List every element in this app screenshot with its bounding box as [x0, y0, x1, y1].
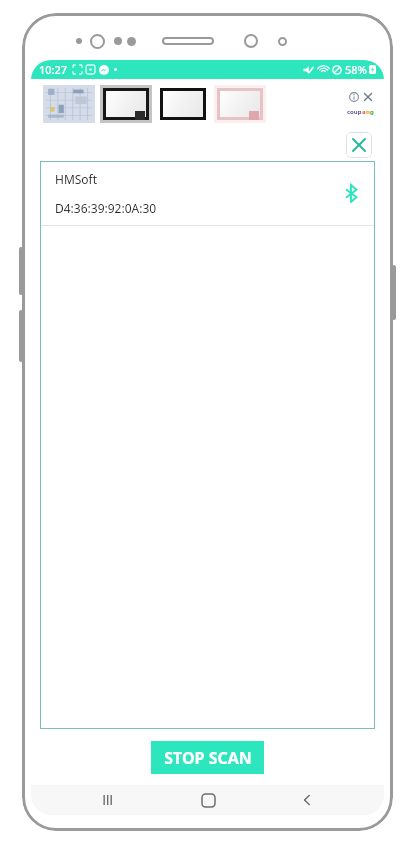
- staticText: HMSoft: [55, 171, 98, 187]
- button[interactable]: STOP SCAN: [151, 741, 264, 774]
- button[interactable]: Home: [186, 785, 230, 815]
- staticText: n: [366, 108, 370, 116]
- staticText: 58%: [345, 62, 367, 77]
- staticText: STOP SCAN: [164, 747, 252, 769]
- other: Bluetooth: [346, 185, 357, 202]
- staticText: coup: [347, 108, 362, 116]
- button[interactable]: HMSoft: [40, 161, 375, 225]
- staticText: 10:27: [39, 62, 68, 77]
- button[interactable]: Back: [285, 785, 329, 815]
- other: Close ad: [363, 92, 373, 102]
- staticText: a: [362, 108, 366, 116]
- staticText: g: [370, 108, 374, 116]
- button[interactable]: Close: [346, 132, 372, 158]
- other: Ad info: [349, 92, 359, 102]
- button[interactable]: Recents: [86, 785, 130, 815]
- staticText: D4:36:39:92:0A:30: [55, 200, 157, 216]
- button[interactable]: Ad info: [31, 79, 384, 129]
